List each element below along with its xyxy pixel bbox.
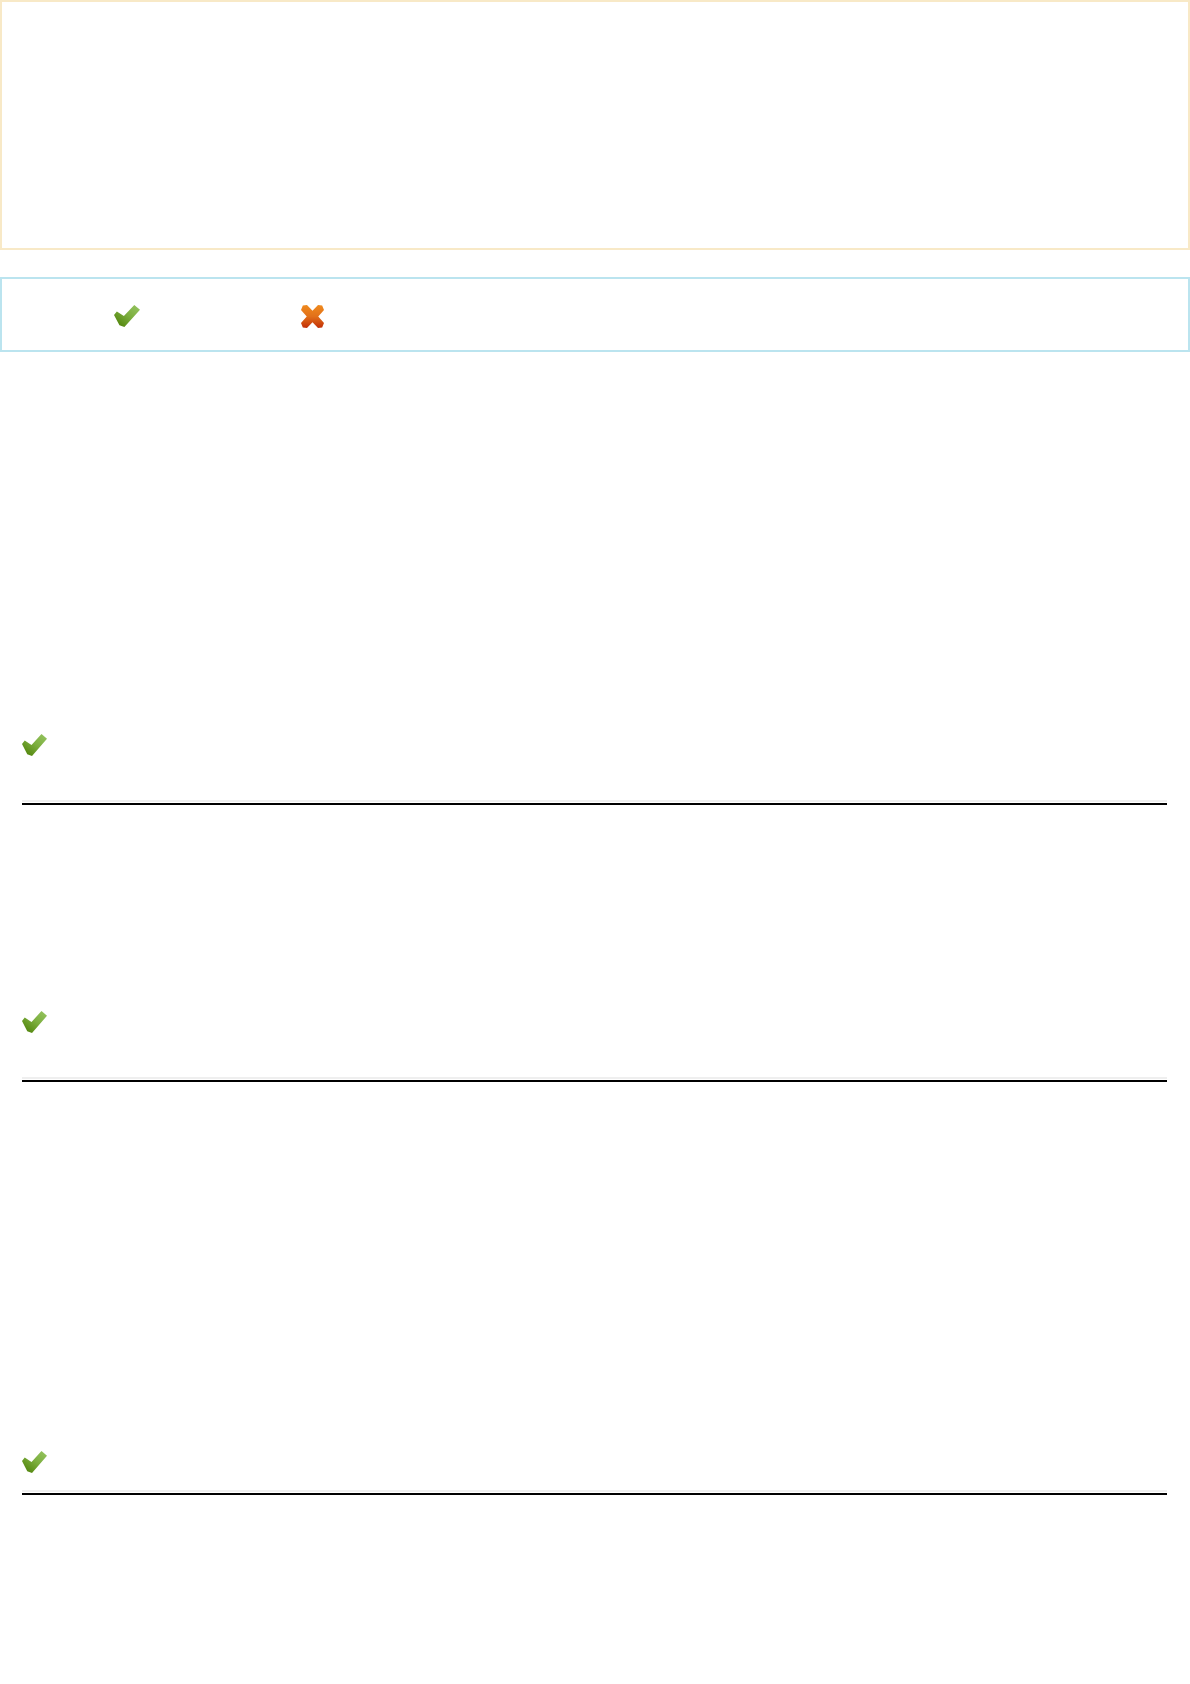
button[interactable]: Verified item 1: [22, 734, 47, 756]
button[interactable]: Banner: [0, 0, 1190, 250]
button[interactable]: Verified item 3: [22, 1451, 47, 1473]
button[interactable]: Verified item 2: [22, 1011, 47, 1033]
button[interactable]: Accept: [114, 305, 140, 327]
button[interactable]: Reject: [301, 305, 324, 328]
